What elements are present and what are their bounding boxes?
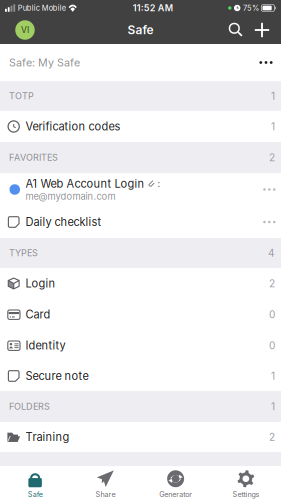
staticText: Login (25, 277, 55, 290)
button[interactable]: Search (223, 16, 249, 44)
staticText: 0 (269, 339, 275, 352)
staticText: 4 (268, 247, 275, 259)
staticText: 11:52 AM (133, 2, 173, 13)
staticText: Verification codes (25, 120, 120, 133)
button[interactable]: A1 Web Account Login (0, 173, 281, 206)
staticText: me@mydomain.com (25, 191, 115, 202)
staticText: 1 (271, 370, 275, 382)
staticText: Settings (232, 490, 259, 499)
button[interactable]: Account (10, 16, 40, 44)
staticText: FAVORITES (9, 152, 58, 163)
staticText: : (157, 178, 160, 189)
button[interactable]: Identity (0, 330, 281, 361)
staticText: 2 (269, 151, 275, 164)
button[interactable]: Login (0, 268, 281, 299)
staticText: 0 (269, 308, 275, 321)
staticText: Safe: My Safe (9, 56, 80, 69)
staticText: 2 (269, 431, 275, 443)
staticText: TOTP (9, 90, 34, 101)
staticText: 1 (271, 120, 275, 133)
staticText: Safe (127, 23, 153, 37)
staticText: Training (25, 430, 69, 444)
staticText: 75% (243, 3, 259, 12)
button[interactable]: Generator (140, 466, 211, 500)
staticText: Daily checklist (25, 215, 101, 229)
staticText: 2 (269, 277, 275, 290)
staticText: VI (21, 25, 29, 35)
button[interactable]: More options (254, 49, 278, 75)
staticText: FOLDERS (9, 401, 50, 412)
staticText: 1 (271, 400, 275, 413)
button[interactable]: Secure note (0, 361, 281, 391)
staticText: Share (95, 490, 115, 499)
staticText: Generator (159, 490, 192, 499)
staticText: Safe (28, 490, 43, 499)
button[interactable]: Safe (0, 466, 70, 500)
button[interactable]: Add item (249, 16, 275, 44)
button[interactable]: Daily checklist (0, 206, 281, 238)
staticText: A1 Web Account Login (25, 177, 144, 190)
staticText: Identity (25, 339, 65, 352)
button[interactable]: Card (0, 299, 281, 330)
button[interactable]: Verification codes (0, 111, 281, 142)
staticText: Public Mobile (18, 3, 66, 12)
staticText: Secure note (25, 369, 88, 383)
staticText: TYPES (9, 247, 38, 258)
staticText: 1 (271, 90, 275, 102)
button[interactable]: Training (0, 422, 281, 452)
button[interactable]: Settings (211, 466, 281, 500)
button[interactable]: Share (70, 466, 140, 500)
staticText: Card (25, 308, 50, 321)
